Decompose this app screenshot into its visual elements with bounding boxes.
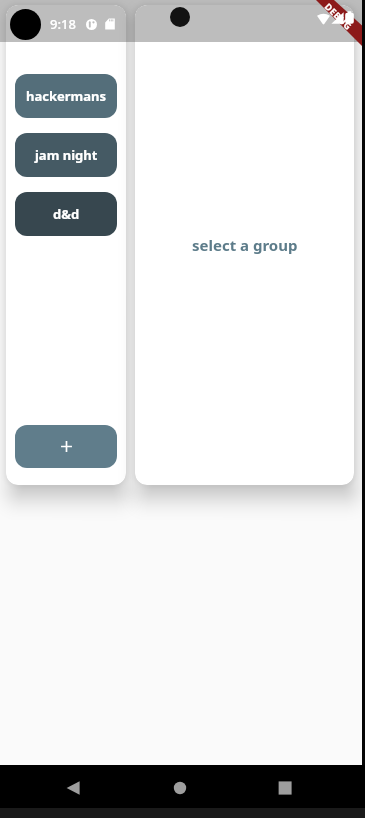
staticText: hackermans (26, 87, 107, 105)
button[interactable]: Add group (15, 425, 117, 468)
staticText: select a group (192, 235, 298, 255)
button[interactable]: select a group (135, 5, 354, 485)
button[interactable]: Back (62, 777, 84, 799)
staticText: 9:18 (50, 15, 76, 33)
button[interactable]: jam night (15, 133, 117, 177)
button[interactable]: hackermans (15, 74, 117, 118)
staticText: jam night (35, 146, 98, 164)
staticText: DEBUG (323, 0, 355, 33)
button[interactable]: Recents (274, 777, 296, 799)
button[interactable]: d&d (15, 192, 117, 236)
button[interactable]: Home (169, 777, 191, 799)
staticText: d&d (53, 205, 80, 223)
